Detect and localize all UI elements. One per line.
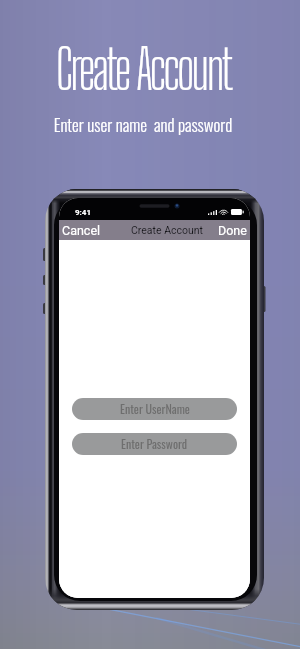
staticText: 9:41 [75,208,92,217]
staticText: Create Account [0,37,293,102]
staticText: Enter user name and password [0,112,293,137]
staticText: Cancel [62,223,101,238]
staticText: Enter Password [121,435,188,453]
staticText: Enter UserName [120,400,190,418]
button[interactable]: Enter Password [72,433,237,455]
button[interactable]: Done [212,221,250,240]
staticText: Create Account [131,224,204,236]
staticText: Done [218,223,247,238]
button[interactable]: Cancel [59,221,107,240]
button[interactable]: Enter UserName [72,398,237,420]
